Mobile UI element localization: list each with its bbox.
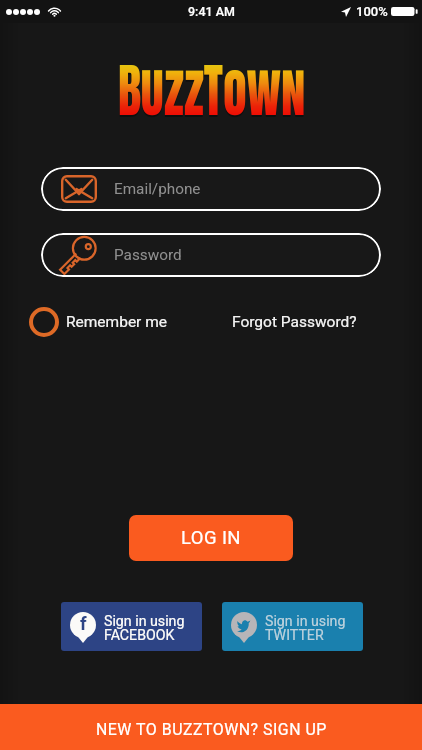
staticText: Email/phone: [114, 180, 201, 198]
staticText: BuzzTown: [117, 46, 305, 134]
staticText: LOG IN: [181, 527, 241, 549]
staticText: BuzzTown: [117, 48, 305, 136]
staticText: Remember me: [66, 313, 168, 331]
staticText: 9:41 AM: [188, 4, 235, 19]
staticText: NEW TO BUZZTOWN? SIGN UP: [96, 720, 327, 739]
staticText: TWITTER: [265, 627, 324, 644]
button[interactable]: NEW TO BUZZTOWN? SIGN UP: [0, 704, 422, 750]
staticText: Sign in using: [104, 613, 185, 630]
button[interactable]: Remember me: [29, 307, 168, 337]
button[interactable]: f: [61, 602, 202, 651]
button[interactable]: LOG IN: [129, 515, 293, 561]
button[interactable]: Password: [41, 233, 381, 277]
staticText: f: [80, 613, 87, 635]
button[interactable]: Sign in using: [222, 602, 363, 651]
staticText: Sign in using: [265, 613, 346, 630]
button[interactable]: Forgot Password?: [232, 313, 357, 331]
staticText: 100%: [356, 4, 388, 19]
staticText: Password: [114, 246, 182, 264]
staticText: FACEBOOK: [104, 627, 175, 644]
button[interactable]: Email/phone: [41, 167, 381, 211]
